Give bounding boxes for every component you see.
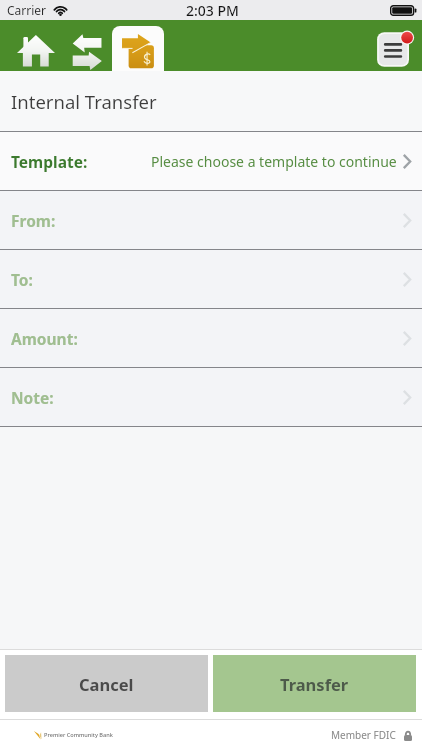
button[interactable]: Internal Transfer [112, 26, 164, 71]
button[interactable]: Home [16, 34, 56, 69]
staticText: From: [11, 210, 56, 231]
staticText: Transfer [280, 673, 349, 695]
staticText: 2:03 PM [186, 1, 239, 20]
button[interactable]: Transfers [71, 34, 102, 71]
staticText: Premier Community Bank [44, 731, 113, 739]
button[interactable]: Cancel [5, 655, 208, 712]
staticText: Cancel [79, 673, 134, 695]
staticText: Member FDIC [331, 728, 396, 742]
staticText: Carrier [7, 2, 47, 18]
button[interactable]: Template: [0, 132, 422, 190]
button[interactable]: From: [0, 191, 422, 249]
staticText: To: [11, 269, 33, 290]
staticText: Internal Transfer [11, 89, 157, 114]
button[interactable]: To: [0, 250, 422, 308]
button[interactable]: Menu [375, 30, 413, 69]
button[interactable]: Amount: [0, 309, 422, 367]
button[interactable]: Note: [0, 368, 422, 426]
staticText: Amount: [11, 328, 78, 349]
staticText: Note: [11, 387, 54, 408]
staticText: Please choose a template to continue [151, 152, 397, 171]
button[interactable]: Transfer [213, 655, 416, 712]
staticText: Template: [11, 151, 88, 172]
